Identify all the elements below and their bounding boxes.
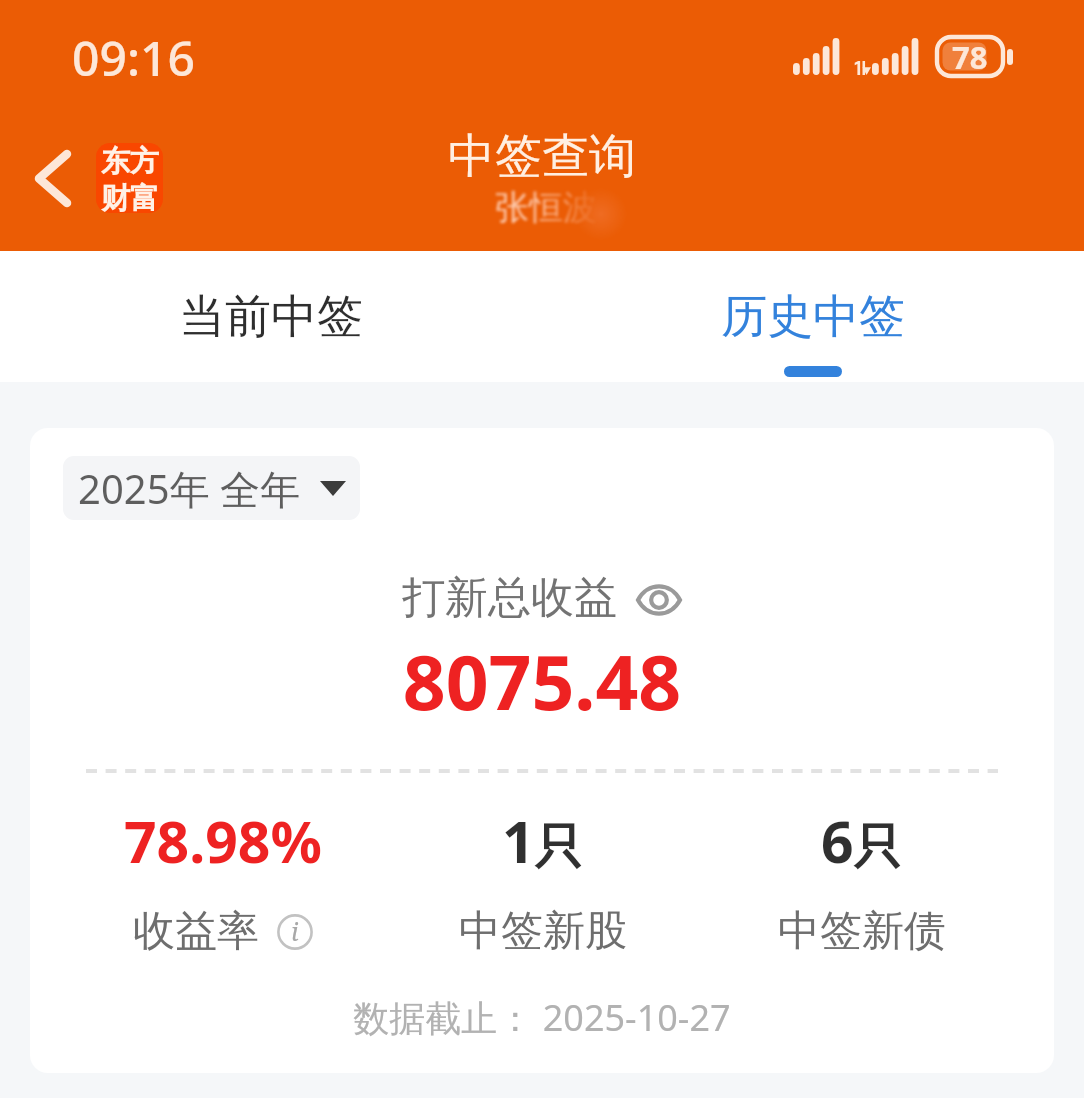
button[interactable]: 当前中签 [0, 251, 542, 382]
button[interactable]: 历史中签 [542, 251, 1084, 382]
staticText: i [291, 914, 299, 948]
staticText: 张恒波 [495, 186, 597, 229]
button[interactable]: East Money [96, 143, 163, 213]
button[interactable]: Toggle amount visibility [636, 584, 682, 616]
staticText: 1只 [502, 802, 583, 880]
staticText: 8075.48 [30, 630, 1054, 732]
staticText: 历史中签 [721, 288, 905, 346]
button[interactable]: Back [18, 143, 88, 213]
staticText: 中签新股 [459, 905, 627, 958]
staticText: 6只 [821, 802, 902, 880]
button[interactable]: Info [277, 914, 313, 950]
staticText: 东方 [101, 143, 159, 180]
staticText: 财富 [101, 180, 159, 213]
button[interactable]: 2025年 全年 [63, 456, 360, 520]
staticText: 打新总收益 [402, 571, 617, 625]
staticText: 78 [952, 36, 988, 75]
staticText: 中签查询 [448, 127, 636, 186]
staticText: 中签新债 [778, 905, 946, 958]
staticText: 当前中签 [179, 288, 363, 346]
staticText: 收益率 [133, 905, 259, 958]
staticText: 09:16 [72, 25, 195, 90]
staticText: 78.98% [124, 802, 322, 880]
staticText: 数据截止： 2025-10-27 [30, 993, 1054, 1042]
staticText: 2025年 全年 [78, 461, 300, 516]
